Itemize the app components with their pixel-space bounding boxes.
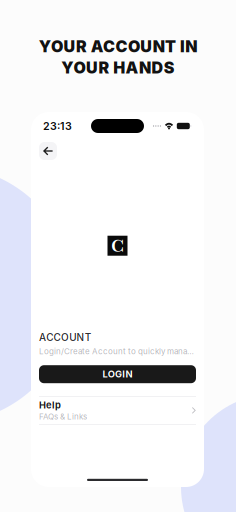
button[interactable]: LOGIN [39, 365, 196, 383]
staticText: 23:13 [43, 119, 72, 132]
staticText: YOUR HANDS [61, 58, 175, 77]
staticText: LOGIN [102, 369, 133, 380]
staticText: C [111, 233, 124, 258]
staticText: Login/Create Account to quickly manage o… [39, 346, 196, 356]
staticText: FAQs & Links [39, 412, 87, 421]
staticText: ACCOUNT [39, 331, 92, 343]
staticText: Help [39, 399, 61, 411]
button[interactable]: Back [39, 142, 57, 160]
button[interactable]: Help [39, 397, 196, 424]
staticText: YOUR ACCOUNT IN [39, 37, 197, 56]
